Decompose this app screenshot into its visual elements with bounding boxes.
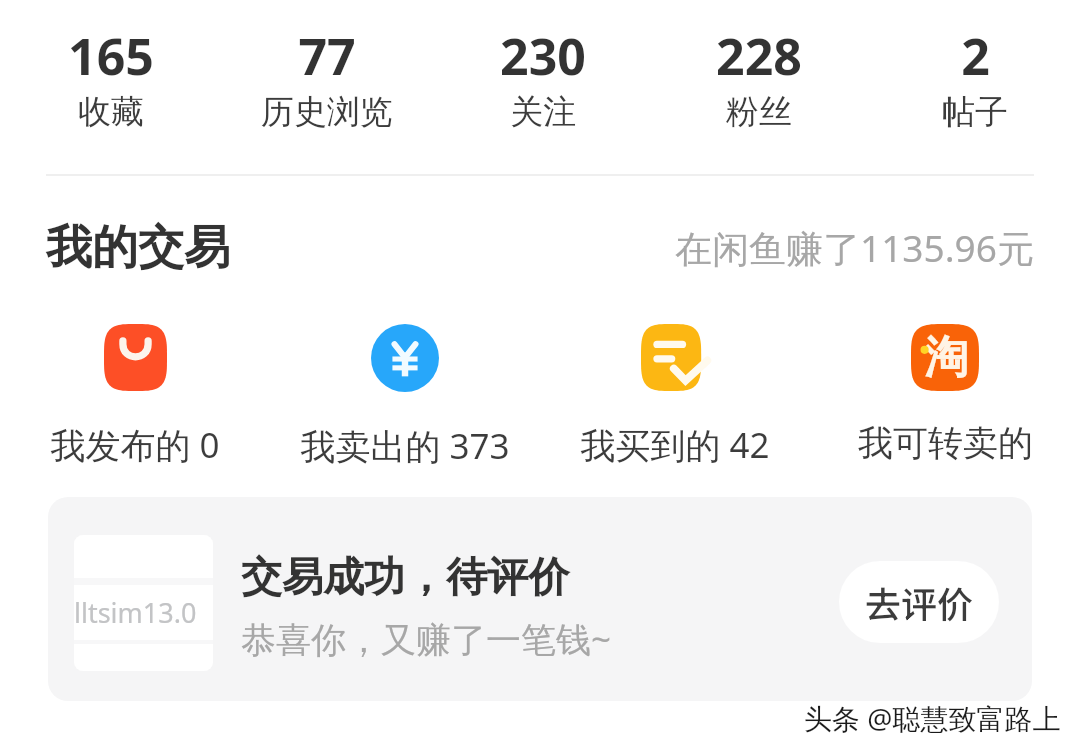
staticText: lltsim13.0 [74, 594, 197, 631]
button[interactable]: 我卖出的 [270, 324, 540, 470]
staticText: 头条 @聪慧致富路上 [804, 697, 1061, 735]
button[interactable]: lltsim13.0 [48, 497, 1032, 701]
staticText: 228 [716, 22, 802, 90]
button[interactable]: 228 [651, 22, 867, 133]
other: 我卖出的 [371, 324, 439, 392]
staticText: 淘 [924, 330, 968, 385]
staticText: 我可转卖的 [858, 421, 1033, 465]
other: 我发布的 [104, 324, 167, 391]
staticText: 在闲鱼赚了1135.96元 [675, 222, 1034, 273]
staticText: 头条 @聪慧致富路上 [804, 701, 1061, 739]
button[interactable]: 77 [219, 22, 435, 133]
staticText: 去评价 [865, 576, 974, 628]
other: 我可转卖的 [911, 324, 979, 391]
staticText: 头条 @聪慧致富路上 [804, 699, 1061, 737]
staticText: 头条 @聪慧致富路上 [806, 697, 1063, 735]
staticText: 交易成功，待评价 [241, 552, 569, 604]
staticText: 恭喜你，又赚了一笔钱~ [241, 615, 612, 663]
staticText: 2 [961, 22, 990, 90]
staticText: 我卖出的 373 [300, 422, 510, 470]
other: 我买到的 [641, 324, 709, 391]
staticText: 头条 @聪慧致富路上 [806, 699, 1063, 737]
staticText: 165 [68, 22, 154, 90]
button[interactable]: 2 [867, 22, 1080, 133]
button[interactable]: 去评价 [839, 561, 999, 643]
staticText: 历史浏览 [261, 91, 393, 133]
staticText: 收藏 [78, 91, 144, 133]
button[interactable]: 我发布的 [0, 324, 270, 469]
staticText: 头条 @聪慧致富路上 [802, 699, 1059, 737]
staticText: 帖子 [942, 91, 1008, 133]
staticText: 我发布的 0 [50, 421, 220, 469]
staticText: 头条 @聪慧致富路上 [806, 701, 1063, 739]
button[interactable]: 我可转卖的 [810, 324, 1080, 465]
button[interactable]: 我的交易 [46, 219, 230, 277]
button[interactable]: 230 [435, 22, 651, 133]
staticText: 粉丝 [726, 91, 792, 133]
staticText: 230 [500, 22, 586, 90]
staticText: 头条 @聪慧致富路上 [802, 701, 1059, 739]
button[interactable]: 我买到的 [540, 324, 810, 469]
button[interactable]: 165 [3, 22, 219, 133]
staticText: 77 [298, 22, 356, 90]
staticText: 我买到的 42 [580, 421, 770, 469]
staticText: 关注 [510, 91, 576, 133]
staticText: 头条 @聪慧致富路上 [802, 697, 1059, 735]
